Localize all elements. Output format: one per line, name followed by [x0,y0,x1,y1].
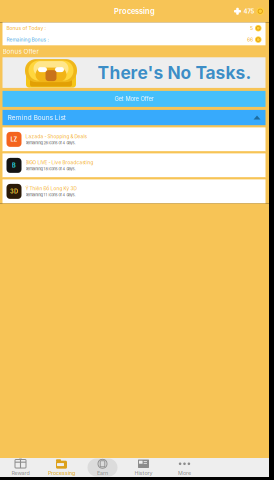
staticText: B [12,162,16,169]
staticText: Processing [48,470,75,476]
staticText: History [134,470,152,476]
button[interactable]: More [164,458,205,477]
staticText: More [178,470,191,476]
staticText: Lazada - Shopping & Deals [25,134,86,139]
staticText: There's No Tasks. [97,62,251,83]
staticText: BIGO LIVE - Live Broadcasting [25,160,93,165]
staticText: Earn [97,470,108,476]
staticText: 3D [10,188,18,195]
staticText: Remaining 28 icons of 4 days. [25,140,75,145]
button[interactable]: Coin balance 475 [233,7,269,15]
staticText: Get More Offer [114,95,153,102]
button[interactable]: 3D [2,179,265,203]
staticText: Bonus Offer [2,47,38,55]
button[interactable]: LZ [2,127,265,151]
staticText: Bonus of Today : [6,25,45,31]
staticText: 475 [243,8,254,15]
staticText: Remaining 11 icons of 4 days. [25,192,75,197]
staticText: Ý Thiên Đồ Long Ký 3D [25,186,76,191]
staticText: Remaining 18 icons of 4 days. [25,166,75,171]
staticText: Remind Bouns List [7,114,65,121]
button[interactable]: Processing [41,458,82,477]
button[interactable]: Reward [0,458,41,477]
button[interactable]: Remind Bouns List [2,110,265,125]
button[interactable]: Earn [82,458,123,477]
button[interactable]: History [123,458,164,477]
staticText: 5 [250,25,253,31]
staticText: Remaining Bonus : [6,37,48,43]
staticText: Reward [11,470,29,476]
staticText: LZ [10,136,17,143]
staticText: Processing [114,7,155,16]
staticText: 66 [247,37,253,43]
button[interactable]: Get More Offer [2,91,265,107]
button[interactable]: B [2,153,265,177]
